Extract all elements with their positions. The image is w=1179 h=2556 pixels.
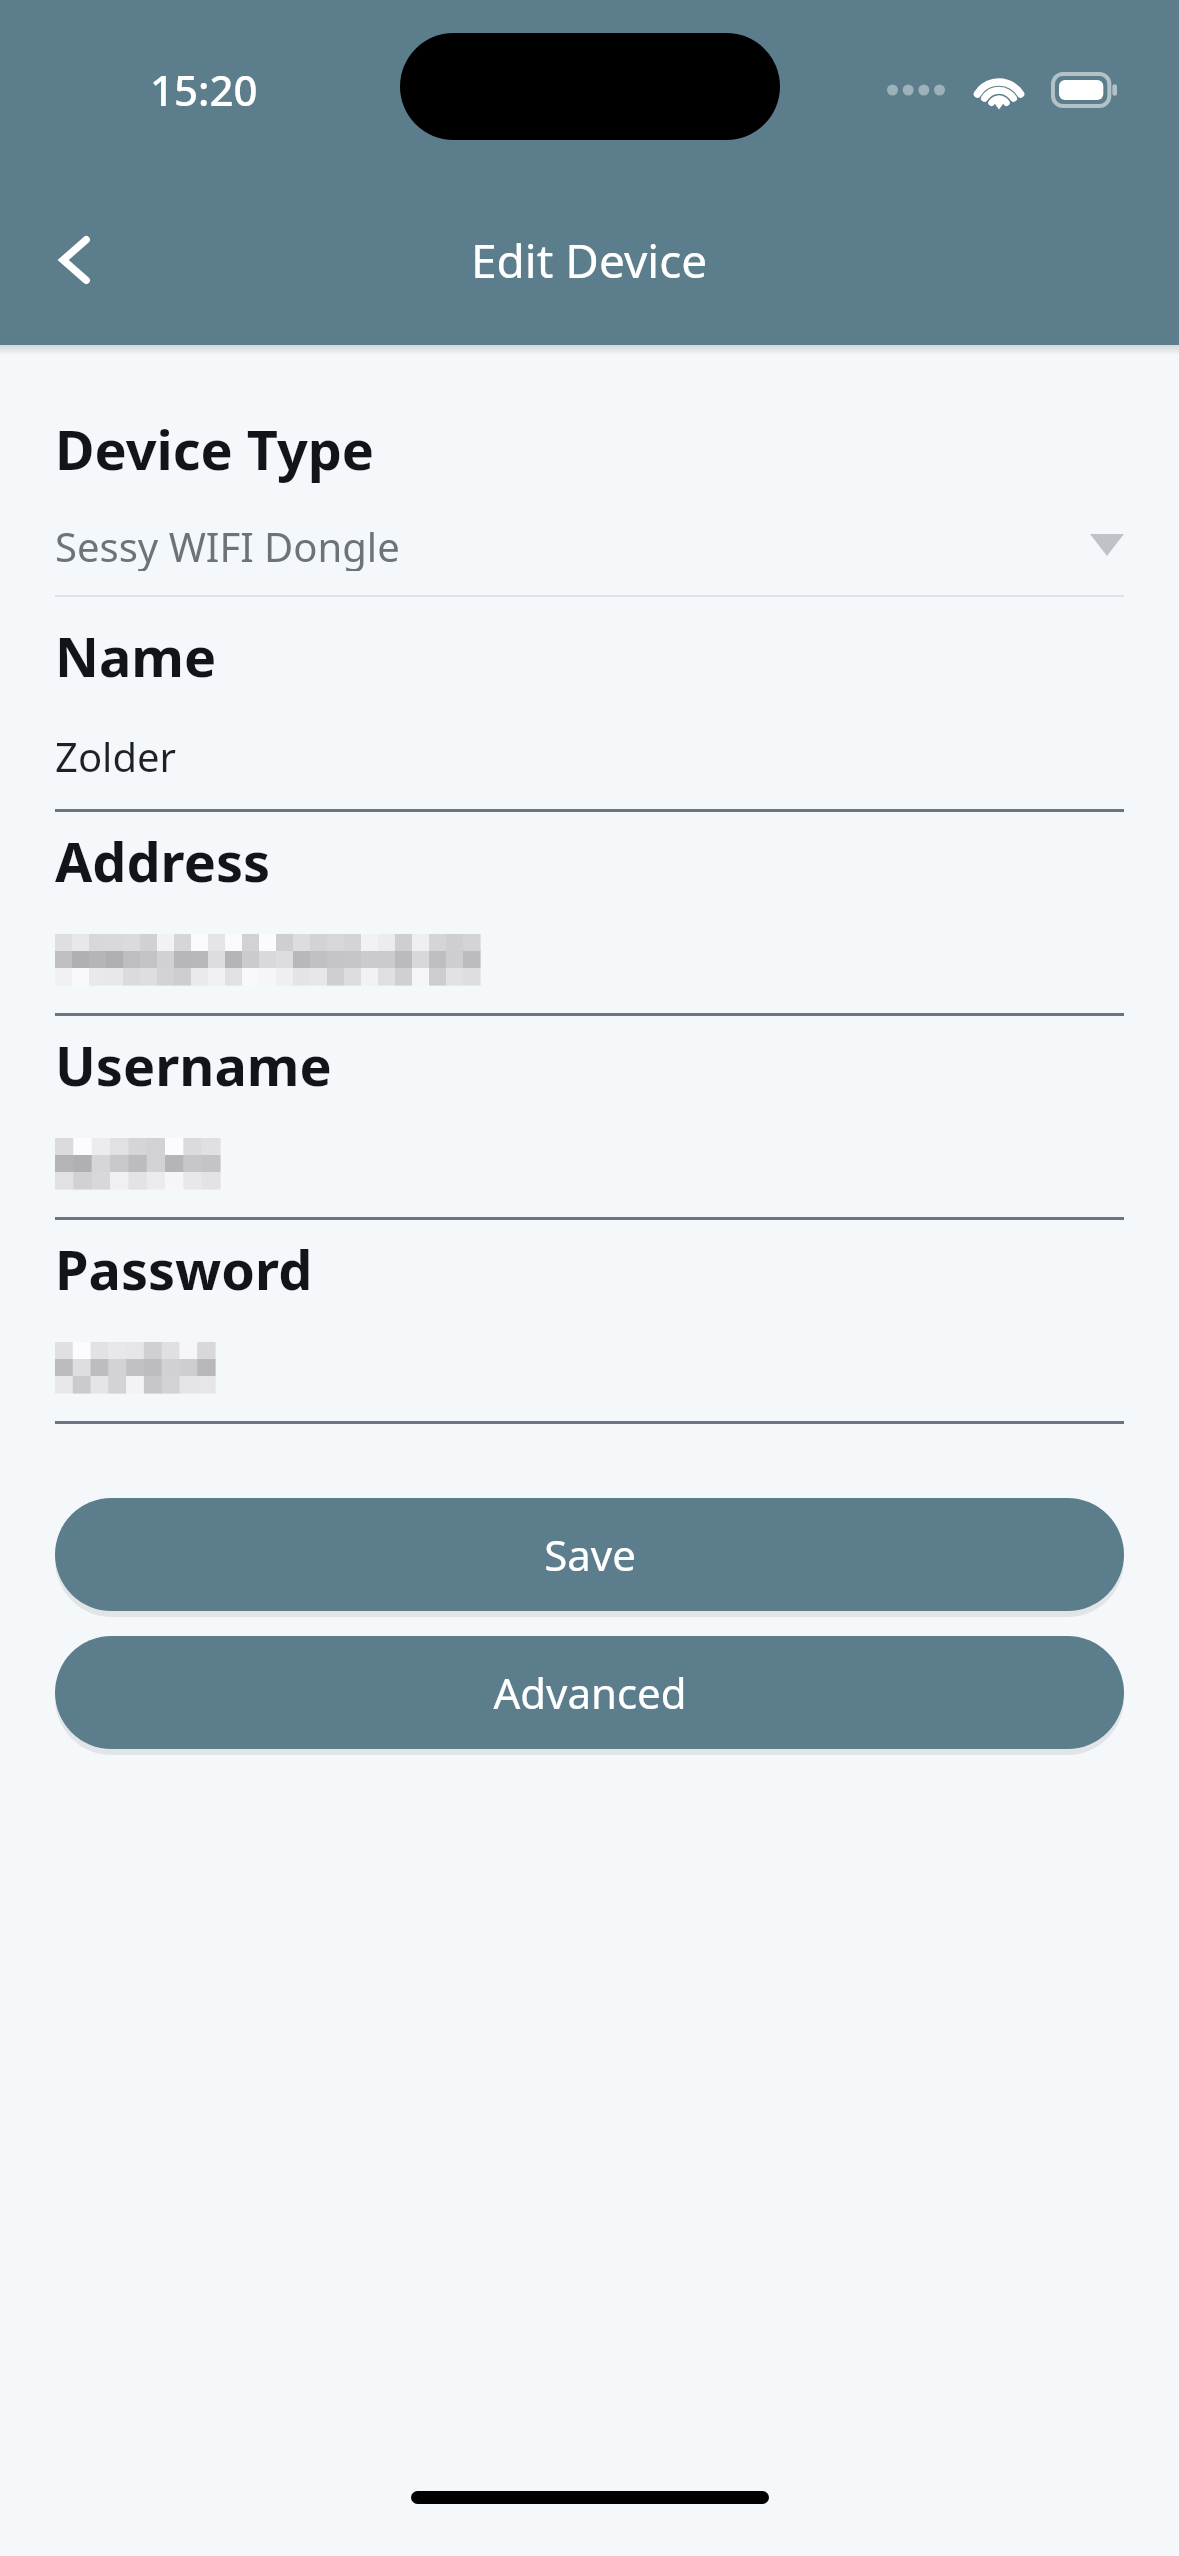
staticText: Edit Device xyxy=(471,229,708,292)
staticText: Device Type xyxy=(55,412,375,486)
staticText: Address xyxy=(55,824,271,898)
button[interactable]: Save xyxy=(55,1498,1124,1611)
staticText: Zolder xyxy=(55,729,177,781)
staticText: Sessy WIFI Dongle xyxy=(55,519,1090,571)
staticText: Save xyxy=(544,1526,636,1583)
button[interactable]: Back xyxy=(22,205,132,315)
button[interactable]: Advanced xyxy=(55,1636,1124,1749)
button[interactable]: Sessy WIFI Dongle xyxy=(55,519,1124,571)
staticText: Name xyxy=(55,619,217,693)
staticText: Advanced xyxy=(493,1664,687,1721)
staticText: Username xyxy=(55,1028,332,1102)
staticText: 15:20 xyxy=(150,61,258,118)
button[interactable]: Zolder xyxy=(55,729,1124,781)
staticText: Password xyxy=(55,1232,313,1306)
